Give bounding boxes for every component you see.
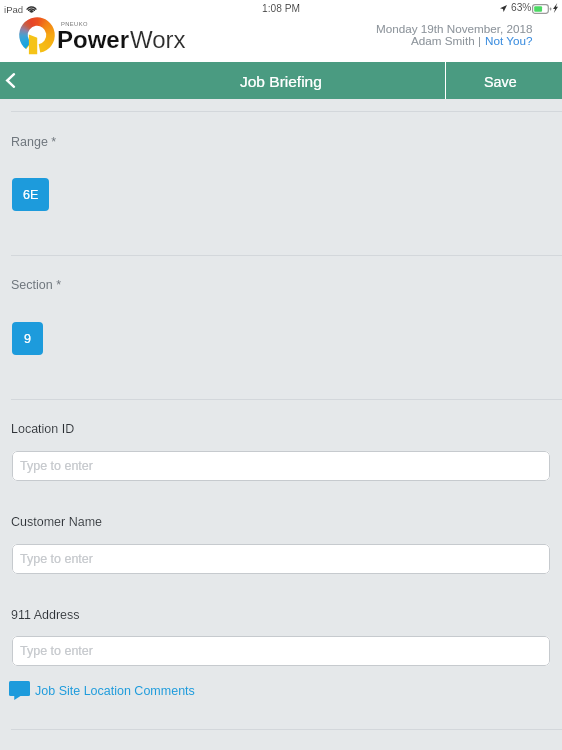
staticText: Job Site Location Comments [35, 684, 195, 698]
staticText: Adam Smith | [411, 34, 485, 47]
staticText: 9 [24, 332, 31, 346]
staticText: Type to enter [20, 459, 93, 473]
staticText: Monday 19th November, 2018 [376, 22, 533, 35]
button[interactable]: 9 [12, 322, 43, 355]
button[interactable]: Type to enter [12, 544, 550, 574]
button[interactable]: Save [446, 62, 562, 99]
button[interactable]: Type to enter [12, 451, 550, 481]
button[interactable]: Not You? [485, 34, 533, 47]
staticText: Range * [11, 135, 57, 149]
staticText: 63% [511, 2, 532, 13]
staticText: Type to enter [20, 644, 93, 658]
staticText: 1:08 PM [262, 3, 300, 14]
staticText: PNEUKO [61, 21, 88, 27]
staticText: Customer Name [11, 515, 102, 529]
button[interactable]: Job Site Location Comments [0, 678, 207, 703]
staticText: Type to enter [20, 552, 93, 566]
staticText: Job Briefing [240, 73, 322, 90]
staticText: Location ID [11, 422, 75, 436]
staticText: Save [484, 74, 517, 90]
button[interactable]: Type to enter [12, 636, 550, 666]
staticText: iPad [4, 4, 24, 15]
staticText: Worx [130, 26, 186, 53]
staticText: Not You? [485, 34, 533, 47]
staticText: 911 Address [11, 608, 80, 622]
button[interactable]: Back [0, 62, 42, 99]
staticText: 6E [23, 188, 39, 202]
staticText: Section * [11, 278, 62, 292]
staticText: Power [57, 26, 130, 53]
button[interactable]: 6E [12, 178, 49, 211]
